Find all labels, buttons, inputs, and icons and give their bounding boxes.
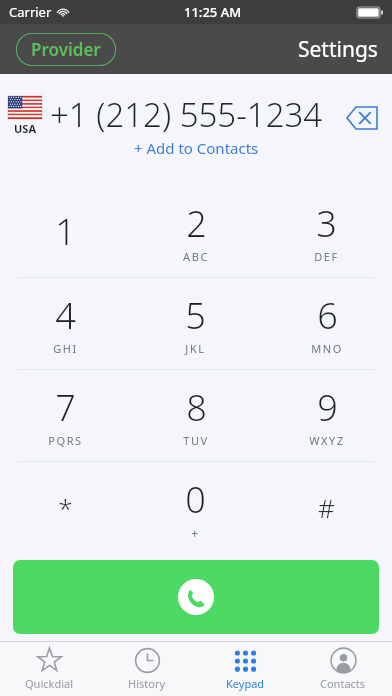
button[interactable]: Quickdial (0, 642, 98, 696)
button[interactable]: 6 (261, 278, 392, 369)
button[interactable]: * (0, 462, 130, 553)
staticText: Keypad (226, 676, 265, 691)
staticText: TUV (183, 433, 209, 448)
staticText: Settings (298, 35, 378, 64)
button[interactable]: Settings (284, 29, 392, 70)
staticText: 6 (317, 291, 338, 340)
staticText: PQRS (48, 433, 83, 448)
button[interactable]: 4 (0, 278, 130, 369)
button[interactable]: + Add to Contacts (126, 136, 267, 160)
button[interactable]: Keypad (196, 642, 294, 696)
button[interactable]: History (98, 642, 196, 696)
staticText: 5 (185, 291, 206, 340)
staticText: Carrier (9, 3, 52, 21)
staticText: +1 (212) 555-1234 (50, 92, 323, 137)
staticText: History (128, 676, 166, 691)
staticText: 7 (55, 383, 76, 432)
button[interactable]: 7 (0, 370, 130, 461)
button[interactable]: 9 (261, 370, 392, 461)
staticText: 11:25 AM (184, 3, 242, 21)
staticText: Quickdial (25, 676, 73, 691)
button[interactable]: 8 (130, 370, 261, 461)
staticText: DEF (314, 249, 339, 264)
staticText: # (318, 490, 335, 525)
button[interactable]: Call (13, 560, 379, 634)
staticText: 9 (317, 383, 338, 432)
button[interactable]: 5 (130, 278, 261, 369)
button[interactable]: Provider (16, 33, 116, 66)
staticText: 1 (55, 207, 76, 256)
staticText: USA (14, 121, 36, 136)
button[interactable]: 0 (130, 462, 261, 553)
button[interactable]: Country USA (8, 96, 42, 136)
button[interactable]: # (261, 462, 392, 553)
staticText: 0 (185, 475, 206, 524)
button[interactable]: 3 (261, 185, 392, 277)
staticText: 8 (186, 383, 207, 432)
button[interactable]: 1 (0, 185, 130, 277)
button[interactable]: Contacts (294, 642, 392, 696)
staticText: 3 (316, 199, 337, 248)
staticText: JKL (185, 341, 206, 356)
staticText: GHI (53, 341, 78, 356)
staticText: Provider (31, 38, 101, 61)
staticText: + (191, 525, 200, 541)
staticText: 4 (55, 291, 76, 340)
staticText: + Add to Contacts (134, 138, 259, 158)
staticText: MNO (311, 341, 343, 356)
staticText: Contacts (320, 676, 366, 691)
staticText: WXYZ (309, 433, 345, 448)
staticText: 2 (186, 199, 207, 248)
staticText: ABC (183, 249, 209, 264)
button[interactable]: 2 (130, 185, 261, 277)
staticText: * (58, 490, 73, 525)
button[interactable]: Delete (342, 98, 382, 138)
